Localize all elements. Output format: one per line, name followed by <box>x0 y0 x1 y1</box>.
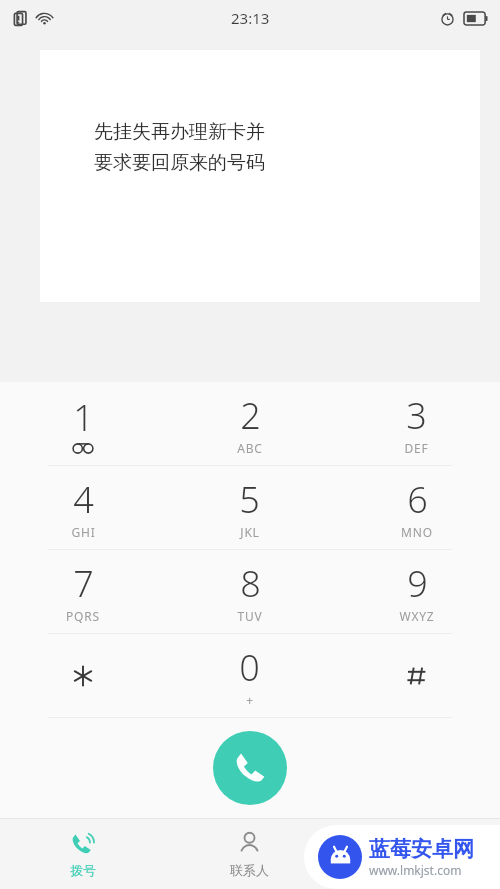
button[interactable]: 0 <box>166 634 333 717</box>
staticText: 2 <box>240 391 261 440</box>
staticText: 拨号 <box>70 862 96 878</box>
staticText: GHI <box>71 524 96 540</box>
staticText: 8 <box>240 559 261 608</box>
staticText: 0 <box>239 643 260 692</box>
button[interactable]: 联系人 <box>166 819 333 889</box>
button[interactable]: 1 <box>0 382 166 465</box>
staticText: 通话记录 <box>391 862 443 878</box>
staticText: 先挂失再办理新卡并 <box>94 120 265 144</box>
button[interactable]: 8 <box>166 550 333 633</box>
button[interactable]: 5 <box>166 466 333 549</box>
staticText: 7 <box>73 559 94 608</box>
button[interactable]: * <box>0 634 166 717</box>
button[interactable]: 2 <box>166 382 333 465</box>
button[interactable]: 通话记录 <box>333 819 500 889</box>
staticText: PQRS <box>66 608 100 624</box>
staticText: www.lmkjst.com <box>369 862 462 878</box>
staticText: 3 <box>406 391 427 440</box>
staticText: 23:13 <box>231 8 270 28</box>
staticText: DEF <box>404 440 429 456</box>
staticText: 1 <box>73 393 94 442</box>
button[interactable]: Call <box>213 731 287 805</box>
button[interactable]: 9 <box>333 550 500 633</box>
staticText: MNO <box>401 524 433 540</box>
staticText: ABC <box>237 440 263 456</box>
button[interactable]: 3 <box>333 382 500 465</box>
staticText: JKL <box>240 524 260 540</box>
staticText: 6 <box>407 475 428 524</box>
button[interactable]: 4 <box>0 466 166 549</box>
staticText: 联系人 <box>230 862 269 878</box>
staticText: 蓝莓安卓网 <box>369 836 474 862</box>
button[interactable]: 7 <box>0 550 166 633</box>
staticText: 5 <box>239 475 260 524</box>
staticText: 9 <box>407 559 428 608</box>
button[interactable]: 拨号 <box>0 819 166 889</box>
staticText: + <box>246 692 254 708</box>
staticText: 4 <box>73 475 94 524</box>
staticText: WXYZ <box>399 608 435 624</box>
staticText: TUV <box>237 608 263 624</box>
button[interactable]: # <box>333 634 500 717</box>
staticText: 要求要回原来的号码 <box>94 151 265 175</box>
button[interactable]: 6 <box>333 466 500 549</box>
